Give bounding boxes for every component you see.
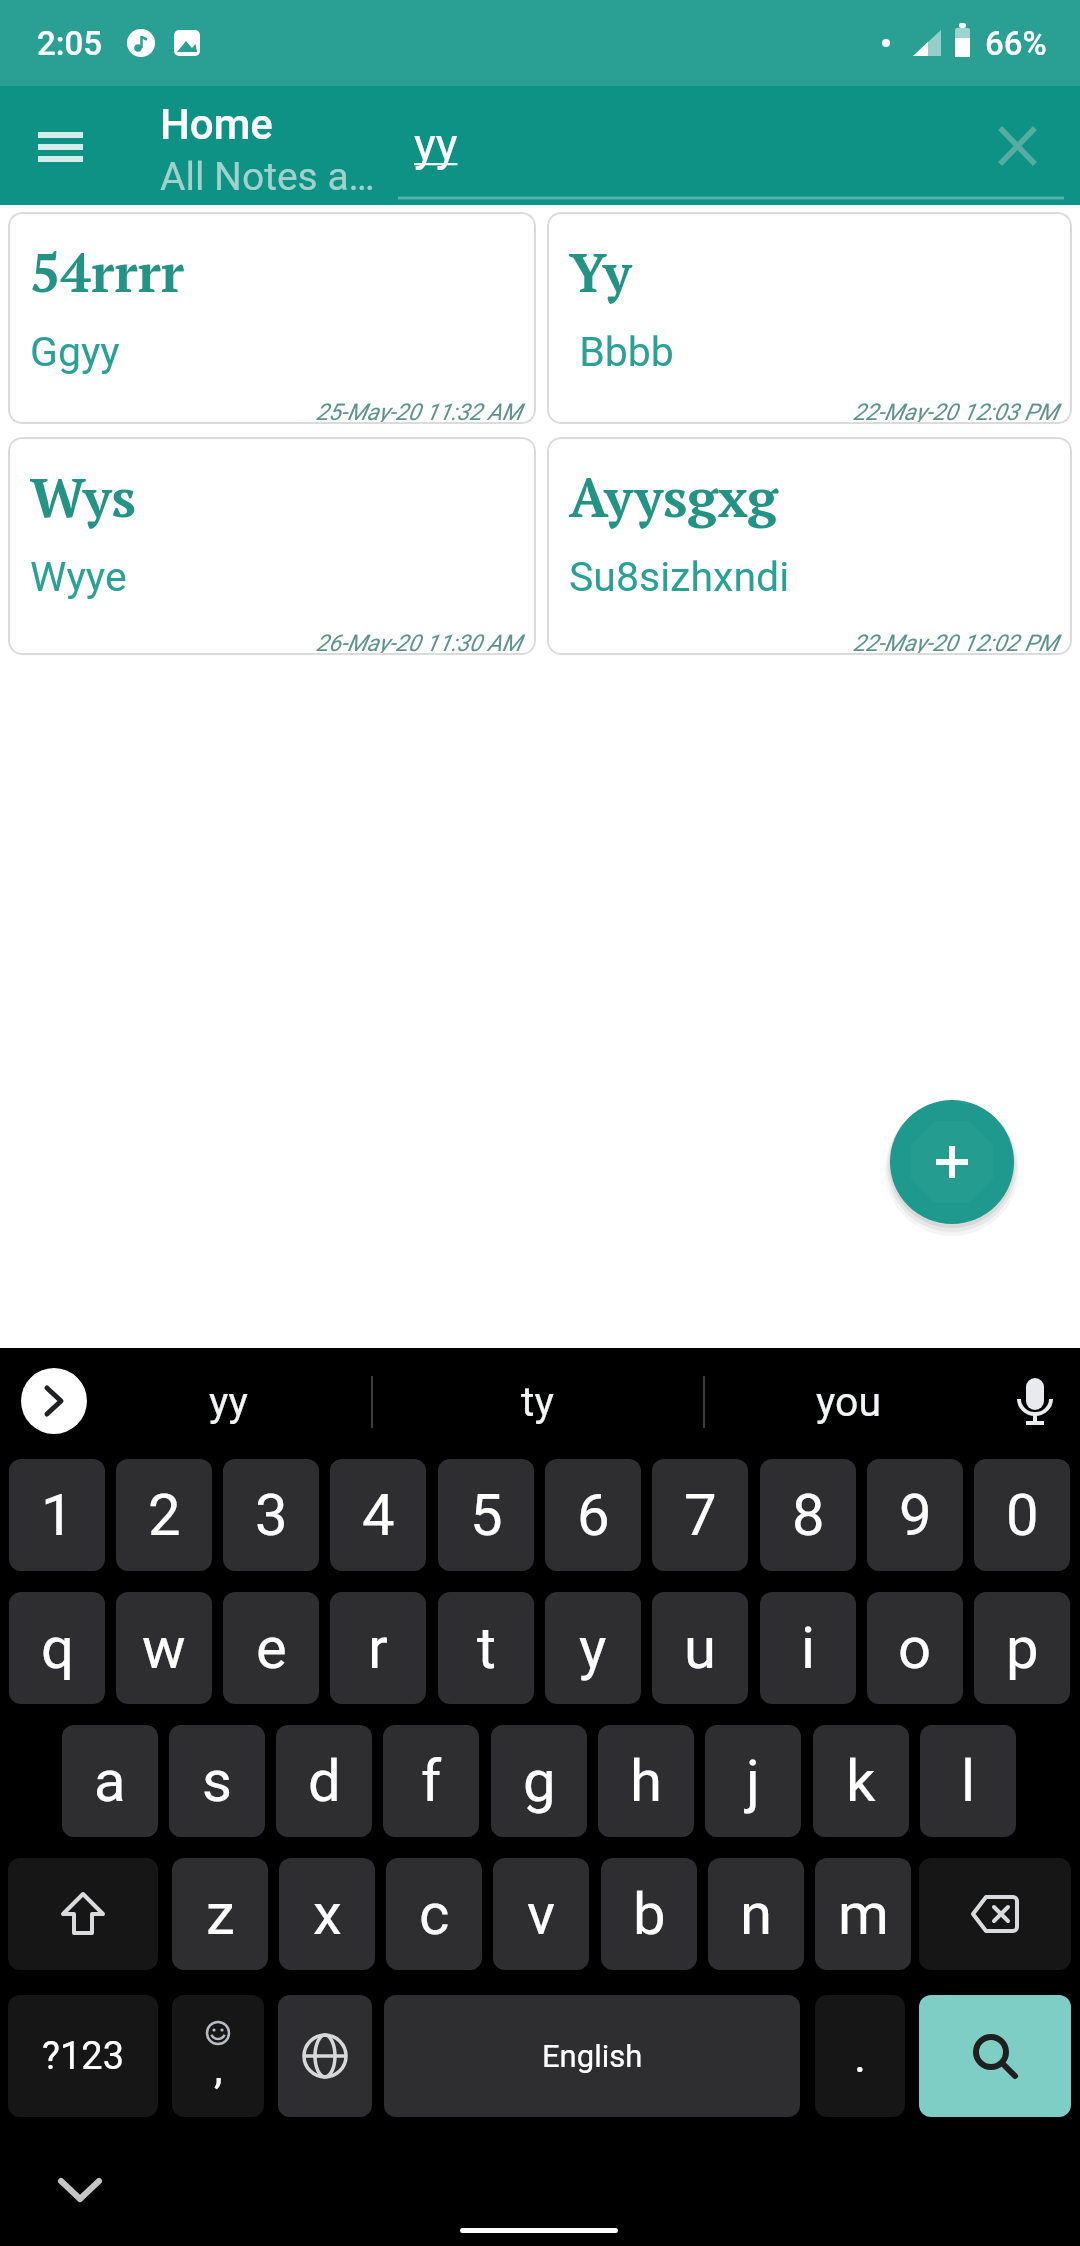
button[interactable]: ?123 <box>8 1995 158 2117</box>
staticText: 2 <box>148 1481 181 1549</box>
button[interactable] <box>40 2158 120 2218</box>
button[interactable]: you <box>769 1372 929 1432</box>
button[interactable]: 7 <box>652 1459 748 1571</box>
button[interactable]: c <box>386 1858 482 1970</box>
button[interactable]: u <box>652 1592 748 1704</box>
button[interactable] <box>990 116 1046 176</box>
staticText: ?123 <box>42 2034 125 2079</box>
button[interactable]: a <box>62 1725 158 1837</box>
button[interactable]: z <box>172 1858 268 1970</box>
staticText: f <box>421 1747 442 1815</box>
staticText: 2:05 <box>37 24 103 63</box>
button[interactable]: yy <box>148 1372 308 1432</box>
staticText: 3 <box>255 1481 288 1549</box>
button[interactable]: l <box>920 1725 1016 1837</box>
button[interactable]: s <box>169 1725 265 1837</box>
staticText: x <box>313 1880 342 1948</box>
staticText: w <box>142 1614 186 1682</box>
staticText: c <box>419 1880 450 1948</box>
button[interactable]: o <box>867 1592 963 1704</box>
staticText: 7 <box>684 1481 717 1549</box>
button[interactable]: r <box>330 1592 426 1704</box>
staticText: 5 <box>470 1481 503 1549</box>
staticText: v <box>527 1880 556 1948</box>
staticText: d <box>308 1747 341 1815</box>
staticText: z <box>206 1880 235 1948</box>
staticText: , <box>214 2042 223 2094</box>
staticText: m <box>838 1880 889 1948</box>
button[interactable] <box>398 106 968 198</box>
staticText: h <box>630 1747 662 1815</box>
staticText: 22-May-20 12:02 PM <box>853 630 1058 655</box>
button[interactable]: y <box>545 1592 641 1704</box>
button[interactable]: , <box>172 1995 264 2117</box>
button[interactable]: 2 <box>116 1459 212 1571</box>
staticText: 66% <box>985 24 1047 63</box>
button[interactable] <box>24 116 98 176</box>
staticText: you <box>816 1378 882 1426</box>
button[interactable]: 1 <box>9 1459 105 1571</box>
button[interactable]: n <box>708 1858 804 1970</box>
staticText: English <box>542 2038 643 2074</box>
button[interactable]: v <box>493 1858 589 1970</box>
staticText: t <box>477 1614 496 1682</box>
staticText: b <box>633 1880 666 1948</box>
button[interactable]: g <box>491 1725 587 1837</box>
staticText: y <box>579 1614 607 1682</box>
button[interactable] <box>21 1368 87 1434</box>
button[interactable]: 6 <box>545 1459 641 1571</box>
button[interactable]: p <box>974 1592 1070 1704</box>
staticText: Yy <box>569 236 632 308</box>
button[interactable] <box>919 1995 1071 2117</box>
button[interactable]: English <box>384 1995 800 2117</box>
button[interactable]: 54rrrr <box>8 212 536 424</box>
staticText: 8 <box>792 1481 825 1549</box>
staticText: Home <box>160 100 273 149</box>
staticText: a <box>94 1747 126 1815</box>
button[interactable]: b <box>601 1858 697 1970</box>
button[interactable]: m <box>815 1858 911 1970</box>
staticText: 22-May-20 12:03 PM <box>853 399 1058 424</box>
button[interactable] <box>8 1858 158 1970</box>
button[interactable]: f <box>383 1725 479 1837</box>
button[interactable]: w <box>116 1592 212 1704</box>
staticText: q <box>41 1614 74 1682</box>
button[interactable]: j <box>705 1725 801 1837</box>
staticText: Su8sizhxndi <box>569 553 790 601</box>
button[interactable]: 4 <box>330 1459 426 1571</box>
staticText: 25-May-20 11:32 AM <box>316 399 522 424</box>
staticText: i <box>801 1614 816 1682</box>
button[interactable]: d <box>276 1725 372 1837</box>
staticText: 6 <box>577 1481 610 1549</box>
button[interactable] <box>884 1094 1020 1230</box>
staticText: p <box>1006 1614 1039 1682</box>
button[interactable]: 8 <box>760 1459 856 1571</box>
button[interactable]: Yy <box>547 212 1072 424</box>
button[interactable]: Wys <box>8 437 536 655</box>
staticText: g <box>523 1747 556 1815</box>
staticText: j <box>746 1747 760 1815</box>
staticText: All Notes a… <box>160 154 375 200</box>
button[interactable]: q <box>9 1592 105 1704</box>
button[interactable]: Ayysgxg <box>547 437 1072 655</box>
button[interactable]: x <box>279 1858 375 1970</box>
button[interactable] <box>919 1858 1071 1970</box>
button[interactable]: i <box>760 1592 856 1704</box>
button[interactable]: k <box>813 1725 909 1837</box>
button[interactable]: e <box>223 1592 319 1704</box>
button[interactable]: t <box>438 1592 534 1704</box>
staticText: Ayysgxg <box>569 461 778 533</box>
staticText: 4 <box>362 1481 395 1549</box>
staticText: 26-May-20 11:30 AM <box>316 630 522 655</box>
button[interactable] <box>278 1995 372 2117</box>
button[interactable] <box>1000 1370 1070 1432</box>
staticText: 9 <box>899 1481 932 1549</box>
button[interactable]: 3 <box>223 1459 319 1571</box>
button[interactable]: ty <box>457 1372 617 1432</box>
button[interactable]: 5 <box>438 1459 534 1571</box>
button[interactable]: 9 <box>867 1459 963 1571</box>
button[interactable]: 0 <box>974 1459 1070 1571</box>
button[interactable]: h <box>598 1725 694 1837</box>
button[interactable]: . <box>815 1995 905 2117</box>
staticText: . <box>854 2029 867 2083</box>
